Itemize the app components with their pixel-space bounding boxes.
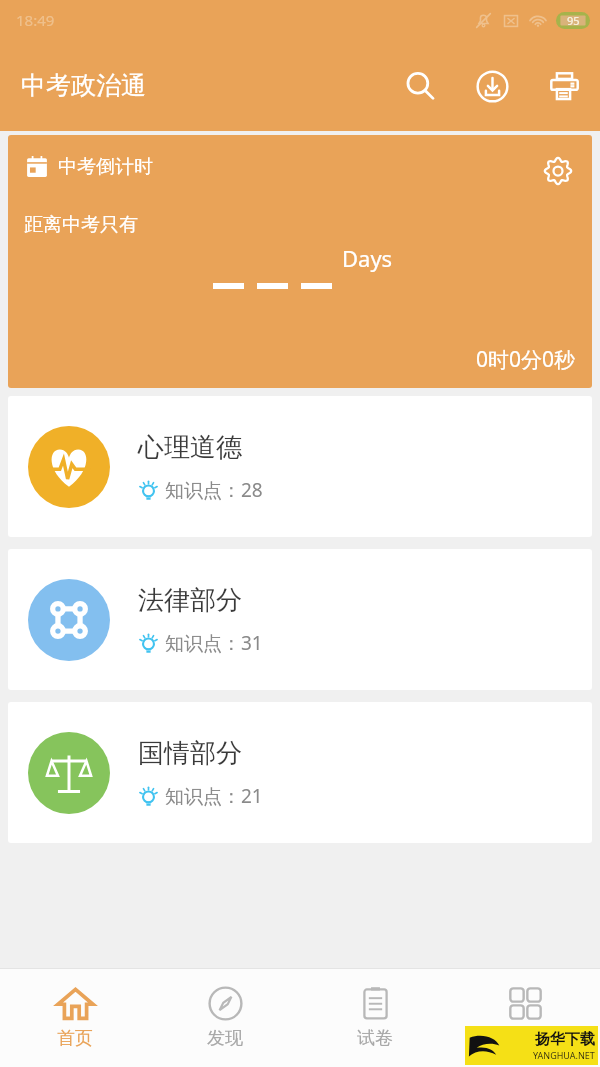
staticText: 发现 bbox=[207, 1027, 243, 1050]
button[interactable]: Download bbox=[468, 62, 516, 110]
staticText: 18:49 bbox=[16, 10, 55, 30]
button[interactable]: 发现 bbox=[150, 968, 300, 1067]
button[interactable]: Print bbox=[540, 62, 588, 110]
button[interactable]: 心理道德 bbox=[8, 396, 592, 537]
staticText: 国情部分 bbox=[138, 737, 242, 770]
staticText: 心理道德 bbox=[138, 431, 242, 464]
button[interactable]: 中考倒计时 bbox=[8, 135, 592, 388]
button[interactable]: Search bbox=[396, 62, 444, 110]
button[interactable]: 首页 bbox=[0, 968, 150, 1067]
staticText: 试卷 bbox=[357, 1027, 393, 1050]
button[interactable]: 试卷 bbox=[300, 968, 450, 1067]
button[interactable]: 国情部分 bbox=[8, 702, 592, 843]
staticText: 95 bbox=[567, 13, 580, 28]
button[interactable]: Settings bbox=[538, 151, 578, 191]
staticText: 知识点：28 bbox=[165, 477, 263, 503]
staticText: 中考政治通 bbox=[21, 70, 146, 101]
button[interactable]: Categories bbox=[450, 968, 600, 1067]
staticText: 中考倒计时 bbox=[58, 155, 153, 179]
staticText: 法律部分 bbox=[138, 584, 242, 617]
button[interactable]: 法律部分 bbox=[8, 549, 592, 690]
staticText: Days bbox=[342, 243, 393, 273]
staticText: 距离中考只有 bbox=[24, 213, 138, 237]
staticText: 扬华下载 bbox=[535, 1030, 595, 1049]
staticText: 首页 bbox=[57, 1027, 93, 1050]
staticText: 0时0分0秒 bbox=[476, 345, 576, 374]
staticText: 知识点：31 bbox=[165, 630, 263, 656]
staticText: YANGHUA.NET bbox=[533, 1049, 595, 1061]
staticText: 知识点：21 bbox=[165, 783, 263, 809]
